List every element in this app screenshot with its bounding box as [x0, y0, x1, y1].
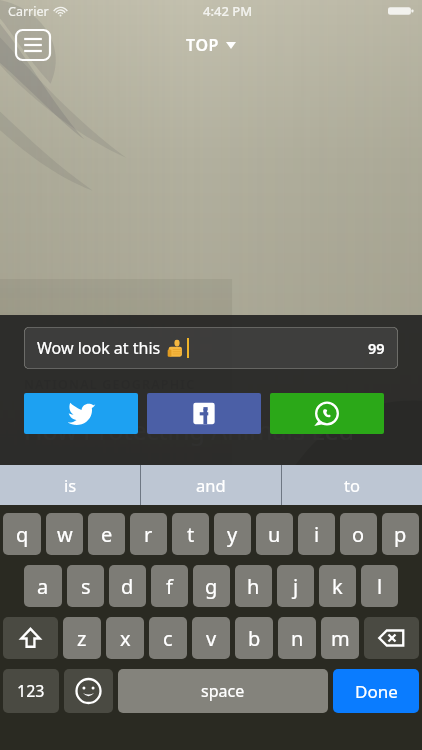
staticText: m [331, 625, 350, 652]
staticText: l [377, 573, 383, 600]
button[interactable]: z [63, 617, 101, 659]
staticText: f [166, 573, 173, 600]
staticText: s [81, 573, 91, 600]
button[interactable]: Emoji [64, 669, 113, 713]
staticText: 4:42 PM [203, 2, 253, 20]
button[interactable]: q [3, 513, 41, 555]
button[interactable]: Shift [3, 617, 58, 659]
button[interactable]: t [172, 513, 209, 555]
button[interactable]: o [340, 513, 377, 555]
button[interactable]: Backspace [364, 617, 419, 659]
staticText: space [201, 680, 245, 702]
staticText: g [205, 573, 218, 600]
staticText: n [291, 625, 304, 652]
button[interactable]: Share on WhatsApp [270, 393, 384, 434]
button[interactable]: Share on Twitter [24, 393, 138, 434]
staticText: Wow look at this [37, 337, 161, 359]
staticText: d [121, 573, 134, 600]
button[interactable]: v [192, 617, 230, 659]
button[interactable]: h [235, 565, 272, 607]
staticText: c [163, 625, 173, 652]
staticText: TOP [186, 34, 220, 56]
staticText: h [247, 573, 260, 600]
staticText: v [206, 625, 217, 652]
button[interactable]: c [149, 617, 187, 659]
staticText: is [64, 474, 77, 496]
button[interactable]: Share on Facebook [147, 393, 261, 434]
staticText: o [352, 521, 365, 548]
staticText: 99 [368, 338, 385, 358]
staticText: k [332, 573, 343, 600]
staticText: u [268, 521, 281, 548]
staticText: e [101, 521, 113, 548]
staticText: p [394, 521, 407, 548]
button[interactable]: g [193, 565, 230, 607]
button[interactable]: f [151, 565, 188, 607]
button[interactable]: x [106, 617, 144, 659]
button[interactable]: i [298, 513, 335, 555]
button[interactable]: TOP [186, 34, 236, 56]
staticText: q [16, 521, 29, 548]
button[interactable]: u [256, 513, 293, 555]
button[interactable]: y [214, 513, 251, 555]
button[interactable]: n [278, 617, 316, 659]
staticText: r [144, 521, 153, 548]
staticText: w [57, 521, 73, 548]
staticText: Done [355, 680, 398, 703]
button[interactable]: r [130, 513, 167, 555]
button[interactable]: Done [333, 669, 419, 713]
button[interactable]: Wow look at this [24, 327, 398, 369]
button[interactable]: to [282, 465, 422, 505]
staticText: b [248, 625, 261, 652]
staticText: x [120, 625, 131, 652]
button[interactable]: p [382, 513, 419, 555]
staticText: Carrier [8, 3, 49, 20]
staticText: t [187, 521, 195, 548]
staticText: 123 [17, 680, 45, 702]
staticText: to [344, 474, 360, 496]
button[interactable]: space [118, 669, 328, 713]
button[interactable]: Menu [16, 30, 50, 60]
button[interactable]: e [88, 513, 125, 555]
button[interactable]: is [0, 465, 140, 505]
staticText: and [196, 474, 226, 496]
staticText: z [77, 625, 87, 652]
button[interactable]: j [277, 565, 314, 607]
staticText: How Protecting Animals Led [24, 413, 355, 447]
button[interactable]: d [109, 565, 146, 607]
staticText: j [293, 573, 299, 600]
button[interactable]: and [141, 465, 281, 505]
button[interactable]: w [46, 513, 83, 555]
staticText: i [314, 521, 320, 548]
button[interactable]: a [24, 565, 62, 607]
button[interactable]: 123 [3, 669, 59, 713]
staticText: y [227, 521, 238, 548]
button[interactable]: l [361, 565, 398, 607]
button[interactable]: m [321, 617, 359, 659]
button[interactable]: b [235, 617, 273, 659]
button[interactable]: k [319, 565, 356, 607]
staticText: a [37, 573, 49, 600]
button[interactable]: s [67, 565, 104, 607]
